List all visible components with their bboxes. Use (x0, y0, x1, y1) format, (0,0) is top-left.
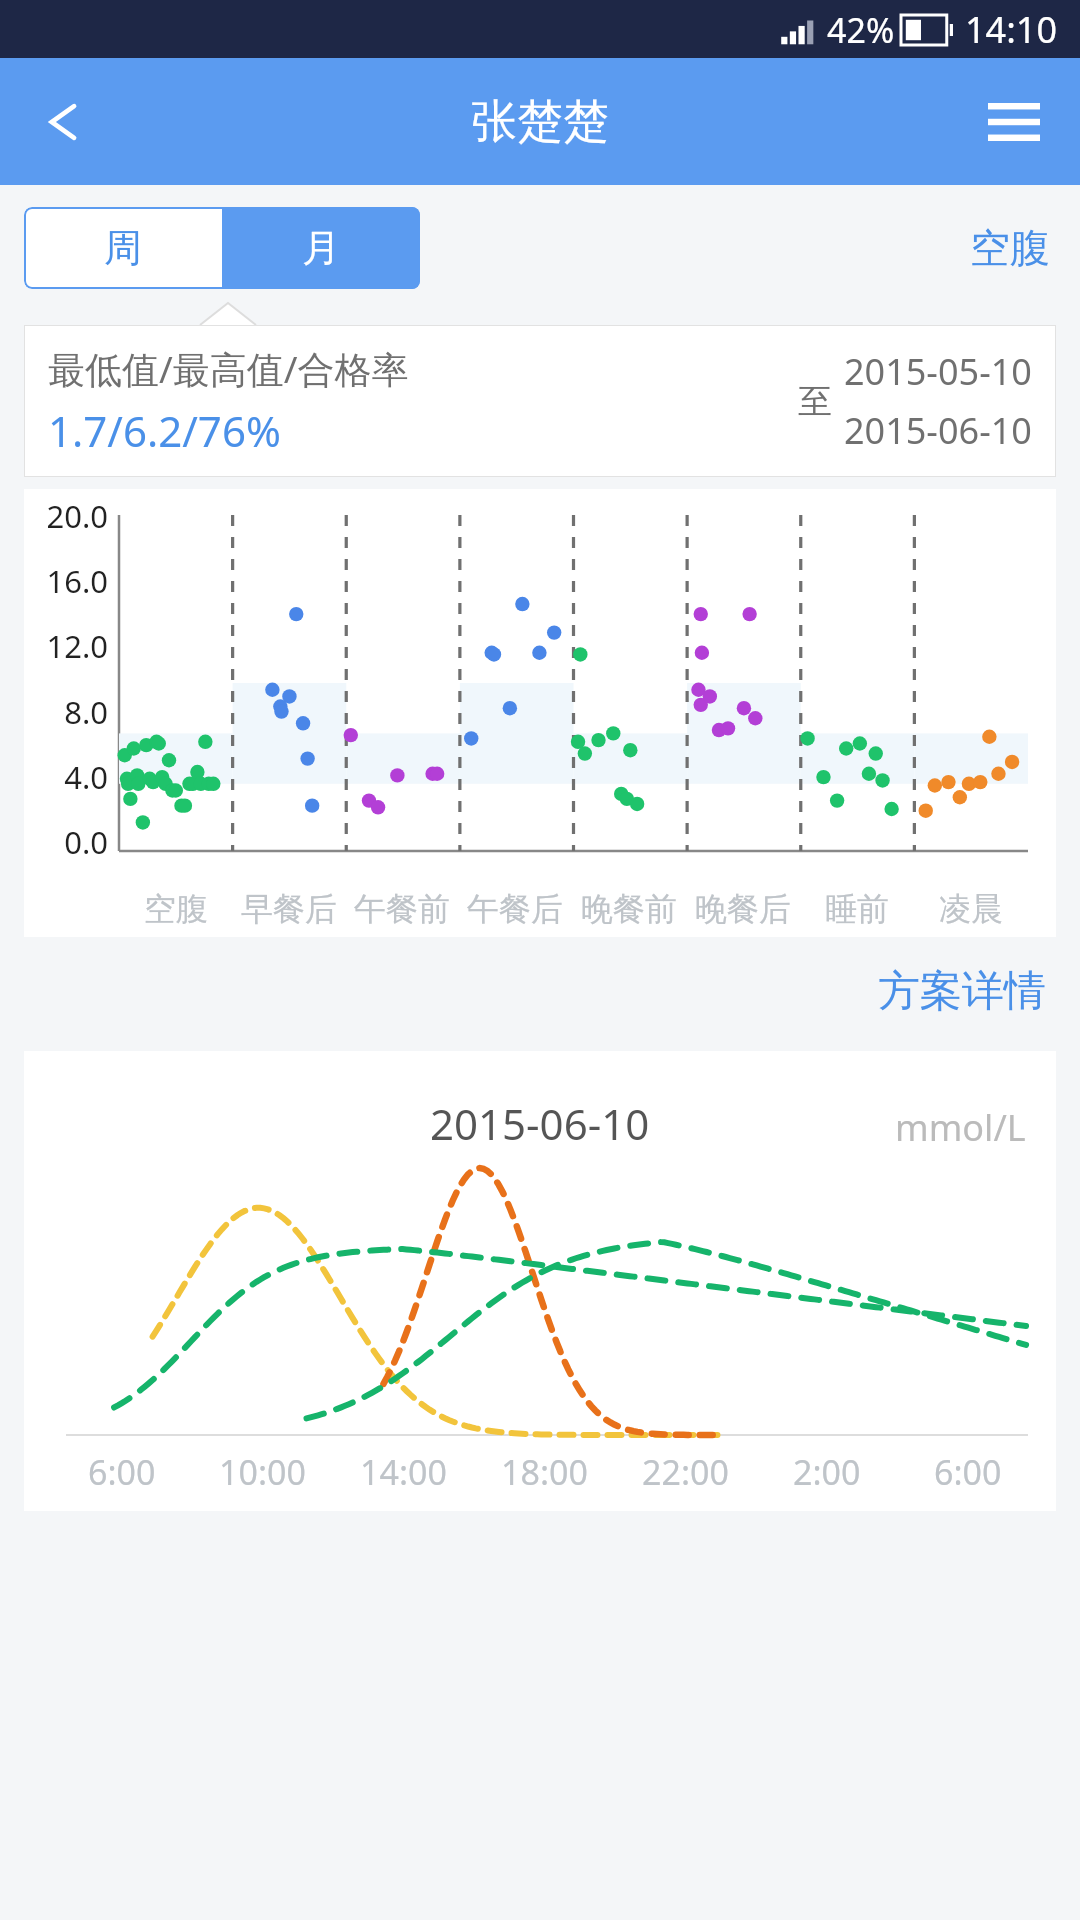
staticText: 张楚楚 (471, 93, 609, 151)
staticText: 2:00 (793, 1449, 861, 1495)
staticText: 14:00 (360, 1449, 447, 1495)
staticText: 晚餐后 (695, 889, 791, 929)
staticText: 4.0 (34, 756, 108, 798)
staticText: 1.7/6.2/76% (48, 402, 281, 459)
staticText: mmol/L (895, 1103, 1026, 1152)
staticText: 10:00 (219, 1449, 306, 1495)
staticText: 20.0 (34, 495, 108, 537)
staticText: 6:00 (934, 1449, 1002, 1495)
staticText: 22:00 (642, 1449, 729, 1495)
staticText: 月 (302, 224, 340, 272)
staticText: 至 (798, 380, 832, 423)
staticText: 0.0 (34, 821, 108, 863)
staticText: 最低值/最高值/合格率 (48, 343, 409, 394)
staticText: 睡前 (825, 889, 889, 929)
button[interactable]: Back (22, 80, 106, 164)
staticText: 周 (104, 224, 142, 272)
button[interactable]: 2015-06-10 (24, 1051, 1056, 1511)
button[interactable]: 20.0 (24, 489, 1056, 937)
button[interactable]: 最低值/最高值/合格率 (24, 325, 1056, 477)
button[interactable]: 月 (222, 207, 420, 289)
button[interactable]: Menu (972, 80, 1056, 164)
staticText: 午餐前 (354, 889, 450, 929)
staticText: 方案详情 (878, 965, 1046, 1018)
staticText: 12.0 (34, 625, 108, 667)
button[interactable]: 空腹 (964, 217, 1056, 279)
staticText: 空腹 (144, 889, 208, 929)
staticText: 16.0 (34, 560, 108, 602)
staticText: 早餐后 (241, 889, 337, 929)
staticText: 18:00 (501, 1449, 588, 1495)
staticText: 凌晨 (939, 889, 1003, 929)
staticText: 6:00 (88, 1449, 156, 1495)
button[interactable]: 周 (24, 207, 222, 289)
button[interactable]: 方案详情 (870, 957, 1054, 1026)
staticText: 晚餐前 (581, 889, 677, 929)
staticText: 42% (827, 7, 895, 53)
staticText: 空腹 (970, 223, 1050, 273)
staticText: 2015-05-10 (844, 347, 1032, 396)
staticText: 14:10 (965, 5, 1058, 54)
staticText: 午餐后 (467, 889, 563, 929)
staticText: 2015-06-10 (844, 406, 1032, 455)
staticText: 8.0 (34, 691, 108, 733)
staticText: 2015-06-10 (430, 1095, 650, 1152)
